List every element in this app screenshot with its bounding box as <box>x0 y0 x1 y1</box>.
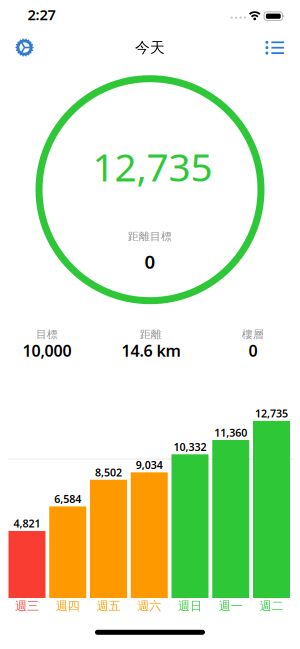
button[interactable] <box>261 36 287 58</box>
staticText: 週一 <box>219 599 243 613</box>
staticText: 8,502 <box>95 465 122 479</box>
staticText: 週四 <box>56 599 80 613</box>
button[interactable] <box>212 440 249 598</box>
staticText: 12,735 <box>255 406 288 420</box>
staticText: 週日 <box>178 599 202 613</box>
staticText: 0 <box>248 340 257 361</box>
staticText: 14.6 km <box>121 340 180 361</box>
staticText: 9,034 <box>136 458 163 472</box>
staticText: 10,332 <box>173 440 206 454</box>
staticText: 週五 <box>96 599 120 613</box>
staticText: 12,735 <box>92 141 212 192</box>
staticText: 2:27 <box>27 5 55 24</box>
staticText: 6,584 <box>54 492 81 506</box>
button[interactable] <box>171 454 208 598</box>
staticText: 週六 <box>137 599 161 613</box>
staticText: 今天 <box>135 38 165 56</box>
staticText: 11,360 <box>214 425 247 440</box>
staticText: 0 <box>144 249 155 274</box>
staticText: 10,000 <box>22 340 71 361</box>
staticText: 樓層 <box>242 328 264 341</box>
staticText: 4,821 <box>13 516 40 531</box>
staticText: 週二 <box>259 599 283 613</box>
staticText: 距離 <box>140 328 162 341</box>
button[interactable] <box>131 472 168 598</box>
staticText: 週三 <box>15 599 39 613</box>
button[interactable] <box>9 32 39 62</box>
staticText: 距離目標 <box>128 230 172 243</box>
button[interactable] <box>8 531 45 598</box>
button[interactable] <box>49 506 86 598</box>
staticText: 目標 <box>36 328 58 341</box>
